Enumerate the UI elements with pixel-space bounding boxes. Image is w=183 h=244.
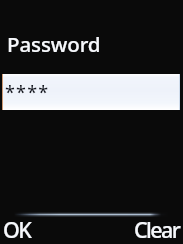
staticText: **** <box>5 80 50 105</box>
button[interactable]: **** <box>2 74 180 110</box>
staticText: Password <box>7 30 101 58</box>
staticText: OK <box>3 215 31 244</box>
staticText: Clear <box>134 215 180 244</box>
button[interactable]: OK <box>0 214 62 244</box>
button[interactable]: Clear <box>121 214 183 244</box>
